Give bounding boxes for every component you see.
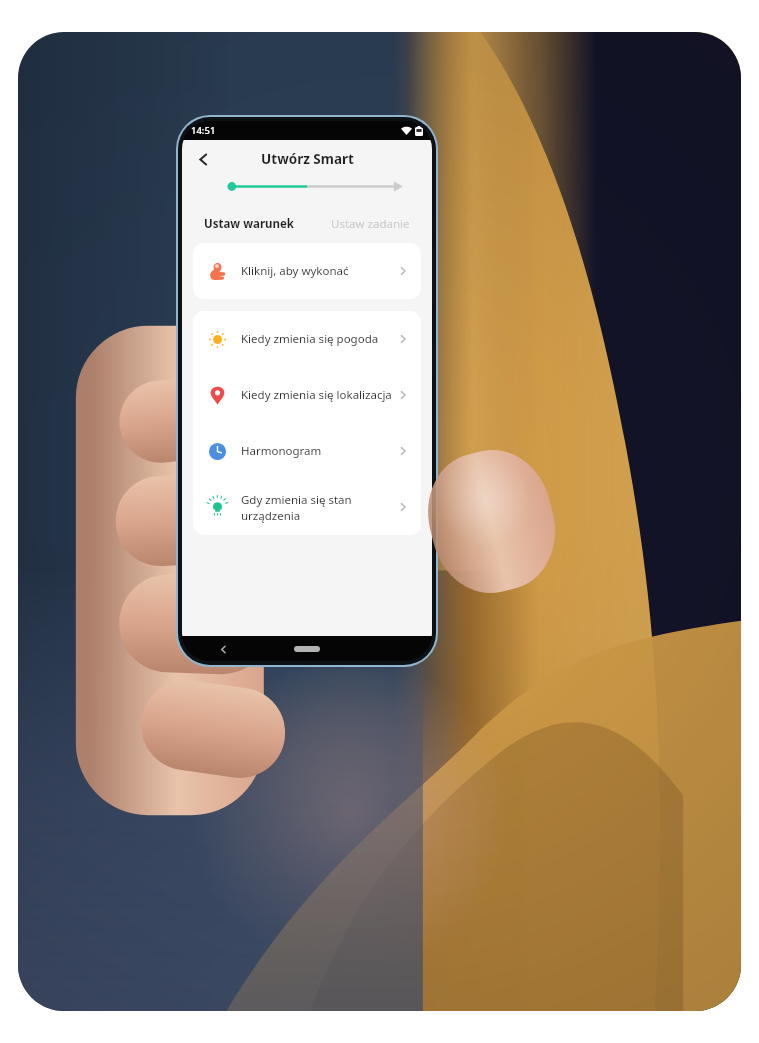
staticText: Ustaw warunek bbox=[204, 216, 294, 232]
staticText: Harmonogram bbox=[241, 443, 322, 459]
staticText: Kliknij, aby wykonać bbox=[241, 263, 349, 279]
button[interactable]: Kiedy zmienia się lokalizacja bbox=[193, 367, 421, 423]
button[interactable]: Back bbox=[186, 142, 220, 176]
staticText: Utwórz Smart bbox=[261, 150, 354, 168]
button[interactable]: Kiedy zmienia się pogoda bbox=[193, 311, 421, 367]
button[interactable]: Gdy zmienia się stan urządzenia bbox=[193, 479, 421, 535]
staticText: Ustaw zadanie bbox=[331, 216, 410, 232]
button[interactable]: Harmonogram bbox=[193, 423, 421, 479]
staticText: Gdy zmienia się stan urządzenia bbox=[241, 492, 352, 523]
button[interactable]: Kliknij, aby wykonać bbox=[193, 243, 421, 299]
staticText: 14:51 bbox=[191, 124, 216, 137]
staticText: Kiedy zmienia się lokalizacja bbox=[241, 387, 392, 403]
staticText: Kiedy zmienia się pogoda bbox=[241, 331, 379, 347]
button[interactable]: Back bbox=[212, 638, 234, 660]
button[interactable]: Home bbox=[294, 646, 320, 652]
